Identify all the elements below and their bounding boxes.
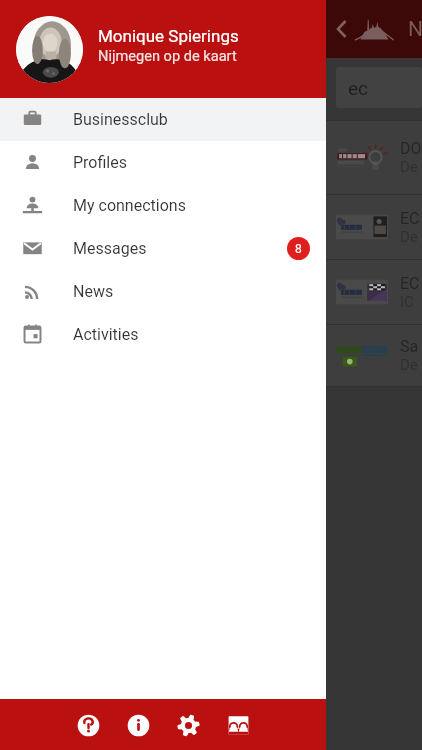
button[interactable]: Help <box>71 708 105 742</box>
staticText: Activities <box>73 325 139 344</box>
staticText: ICT <box>400 293 422 311</box>
staticText: 8 <box>295 242 302 256</box>
button[interactable]: My connections <box>0 184 326 227</box>
staticText: Dev <box>400 228 422 246</box>
button[interactable]: Monique Spierings <box>0 0 326 98</box>
staticText: Messages <box>73 239 147 258</box>
staticText: Sal <box>400 337 422 356</box>
button[interactable]: Profiles <box>0 141 326 184</box>
button[interactable]: Log out <box>221 708 255 742</box>
staticText: Profiles <box>73 153 127 172</box>
button[interactable]: Settings <box>171 708 205 742</box>
staticText: Businessclub <box>73 110 168 129</box>
staticText: DO <box>400 139 422 158</box>
staticText: Dev <box>400 158 422 176</box>
button[interactable]: Info <box>121 708 155 742</box>
button[interactable]: Messages <box>0 227 326 270</box>
staticText: Monique Spierings <box>98 26 239 46</box>
staticText: News <box>73 282 114 301</box>
staticText: Nijmegen op de kaart <box>98 47 237 64</box>
staticText: EC <box>400 274 420 293</box>
staticText: My connections <box>73 196 186 215</box>
staticText: Dev <box>400 356 422 374</box>
button[interactable]: Activities <box>0 313 326 356</box>
staticText: ec <box>348 77 369 99</box>
button[interactable]: News <box>0 270 326 313</box>
button[interactable]: Businessclub <box>0 98 326 141</box>
staticText: Netwerk <box>408 17 422 42</box>
staticText: EC <box>400 209 420 228</box>
